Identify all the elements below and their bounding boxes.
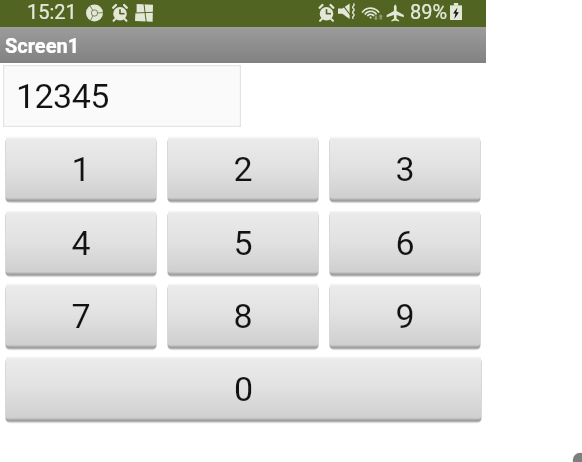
staticText: 6 — [330, 223, 480, 263]
staticText: 89% — [410, 0, 448, 23]
staticText: 9 — [330, 296, 480, 336]
button[interactable]: 1 — [6, 136, 156, 204]
staticText: Screen1 — [5, 34, 80, 57]
button[interactable]: 6 — [330, 210, 480, 278]
staticText: 8 — [168, 296, 318, 336]
button[interactable]: 9 — [330, 283, 480, 351]
staticText: 2 — [168, 149, 318, 189]
staticText: 1 — [6, 149, 156, 189]
button[interactable]: 2 — [168, 136, 318, 204]
staticText: 7 — [6, 296, 156, 336]
button[interactable]: 3 — [330, 136, 480, 204]
staticText: 12345 — [16, 76, 109, 116]
button[interactable]: 0 — [6, 356, 481, 424]
button[interactable]: 7 — [6, 283, 156, 351]
button[interactable]: 5 — [168, 210, 318, 278]
staticText: 3 — [330, 149, 480, 189]
button[interactable]: 4 — [6, 210, 156, 278]
staticText: 5 — [168, 223, 318, 263]
staticText: 0 — [6, 369, 481, 409]
staticText: 4 — [6, 223, 156, 263]
staticText: 15:21 — [27, 0, 77, 23]
button[interactable]: 8 — [168, 283, 318, 351]
button[interactable]: 12345 — [3, 65, 241, 127]
